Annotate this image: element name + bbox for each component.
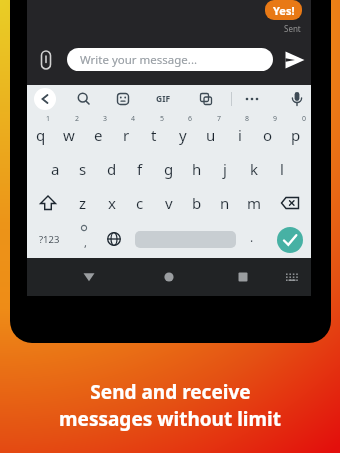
- button[interactable]: f: [127, 156, 153, 182]
- button[interactable]: i: [227, 122, 253, 148]
- staticText: t: [151, 125, 157, 145]
- staticText: g: [164, 159, 174, 179]
- button[interactable]: z: [70, 190, 96, 216]
- button[interactable]: [80, 268, 98, 286]
- button[interactable]: .: [244, 229, 260, 245]
- button[interactable]: g: [156, 156, 182, 182]
- button[interactable]: r: [113, 122, 139, 148]
- staticText: 6: [188, 114, 193, 124]
- button[interactable]: ?123: [33, 229, 65, 249]
- button[interactable]: [38, 194, 58, 212]
- button[interactable]: m: [241, 190, 267, 216]
- staticText: f: [137, 159, 143, 179]
- staticText: n: [220, 193, 230, 213]
- staticText: h: [192, 159, 202, 179]
- button[interactable]: o: [255, 122, 281, 148]
- button[interactable]: a: [42, 156, 68, 182]
- button[interactable]: u: [198, 122, 224, 148]
- staticText: z: [79, 193, 87, 213]
- staticText: s: [79, 159, 87, 179]
- button[interactable]: [38, 48, 54, 72]
- staticText: e: [94, 125, 103, 145]
- button[interactable]: x: [99, 190, 125, 216]
- staticText: l: [280, 159, 284, 179]
- staticText: GIF: [156, 93, 171, 105]
- button[interactable]: [105, 230, 123, 248]
- staticText: Send and receive: [90, 379, 251, 405]
- button[interactable]: [277, 227, 303, 253]
- button[interactable]: t: [141, 122, 167, 148]
- button[interactable]: GIF: [149, 85, 177, 113]
- button[interactable]: [109, 85, 137, 113]
- staticText: p: [291, 125, 301, 145]
- button[interactable]: [70, 85, 98, 113]
- button[interactable]: v: [156, 190, 182, 216]
- staticText: 4: [131, 114, 136, 124]
- staticText: a: [51, 159, 60, 179]
- staticText: ?123: [39, 233, 60, 246]
- staticText: k: [250, 159, 259, 179]
- staticText: i: [238, 125, 242, 145]
- staticText: d: [107, 159, 117, 179]
- button[interactable]: b: [184, 190, 210, 216]
- button[interactable]: [283, 85, 311, 113]
- button[interactable]: [76, 224, 92, 246]
- button[interactable]: s: [70, 156, 96, 182]
- button[interactable]: [31, 85, 59, 113]
- button[interactable]: [282, 48, 308, 72]
- staticText: 3: [103, 114, 108, 124]
- staticText: x: [108, 193, 116, 213]
- button[interactable]: j: [212, 156, 238, 182]
- button[interactable]: Yes!: [265, 0, 302, 20]
- staticText: j: [223, 159, 227, 179]
- staticText: .: [250, 229, 254, 245]
- staticText: ,: [84, 235, 87, 250]
- staticText: 2: [75, 114, 80, 124]
- button[interactable]: p: [283, 122, 309, 148]
- button[interactable]: y: [170, 122, 196, 148]
- staticText: 5: [160, 114, 165, 124]
- staticText: Yes!: [273, 3, 295, 18]
- button[interactable]: [160, 268, 178, 286]
- button[interactable]: [192, 85, 220, 113]
- button[interactable]: Write your message...: [67, 48, 273, 71]
- button[interactable]: [280, 195, 301, 211]
- staticText: 9: [273, 114, 278, 124]
- button[interactable]: [234, 268, 252, 286]
- staticText: 1: [46, 114, 51, 124]
- button[interactable]: k: [241, 156, 267, 182]
- staticText: Sent: [284, 23, 301, 34]
- button[interactable]: [135, 231, 236, 248]
- button[interactable]: c: [127, 190, 153, 216]
- staticText: r: [123, 125, 130, 145]
- staticText: Write your message...: [80, 52, 198, 68]
- button[interactable]: l: [269, 156, 295, 182]
- staticText: 7: [217, 114, 222, 124]
- button[interactable]: w: [56, 122, 82, 148]
- button[interactable]: e: [85, 122, 111, 148]
- button[interactable]: q: [28, 122, 54, 148]
- button[interactable]: h: [184, 156, 210, 182]
- staticText: 8: [245, 114, 250, 124]
- staticText: q: [36, 125, 46, 145]
- button[interactable]: n: [212, 190, 238, 216]
- staticText: c: [136, 193, 144, 213]
- button[interactable]: [238, 85, 266, 113]
- staticText: u: [206, 125, 216, 145]
- staticText: y: [179, 125, 187, 145]
- staticText: 0: [302, 114, 307, 124]
- button[interactable]: [283, 268, 301, 286]
- staticText: o: [263, 125, 273, 145]
- staticText: b: [192, 193, 202, 213]
- staticText: w: [63, 125, 75, 145]
- staticText: messages without limit: [59, 406, 281, 432]
- button[interactable]: d: [99, 156, 125, 182]
- staticText: v: [165, 193, 173, 213]
- staticText: m: [247, 193, 262, 213]
